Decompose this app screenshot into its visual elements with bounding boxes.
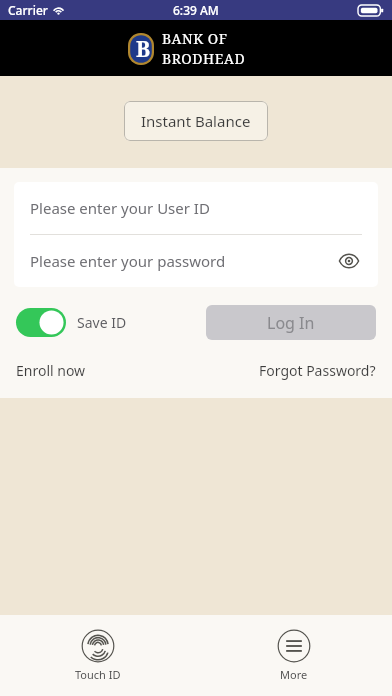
button[interactable]: Instant Balance xyxy=(124,101,268,141)
staticText: 6:39 AM xyxy=(173,2,219,18)
button[interactable]: Forgot Password? xyxy=(259,361,376,380)
button[interactable]: Touch ID xyxy=(57,627,139,684)
button[interactable]: Save ID xyxy=(16,308,127,337)
staticText: Log In xyxy=(267,312,315,334)
staticText: Enroll now xyxy=(16,361,86,380)
staticText: More xyxy=(280,667,308,682)
staticText: Save ID xyxy=(77,313,127,332)
staticText: Please enter your password xyxy=(30,251,226,271)
staticText: BANK OF xyxy=(162,29,228,48)
staticText: Instant Balance xyxy=(141,111,251,131)
button[interactable]: Log In xyxy=(206,305,376,340)
button[interactable]: Please enter your User ID xyxy=(14,182,378,234)
staticText: Forgot Password? xyxy=(259,361,376,380)
staticText: Touch ID xyxy=(75,667,121,682)
button[interactable]: Enroll now xyxy=(16,361,86,380)
staticText: Please enter your User ID xyxy=(30,198,210,218)
button[interactable]: More xyxy=(259,627,329,684)
staticText: Carrier xyxy=(8,2,48,18)
button[interactable]: Please enter your password xyxy=(14,235,378,287)
staticText: BRODHEAD xyxy=(162,49,246,68)
button[interactable]: Show password xyxy=(336,248,362,274)
staticText: B xyxy=(136,35,151,64)
